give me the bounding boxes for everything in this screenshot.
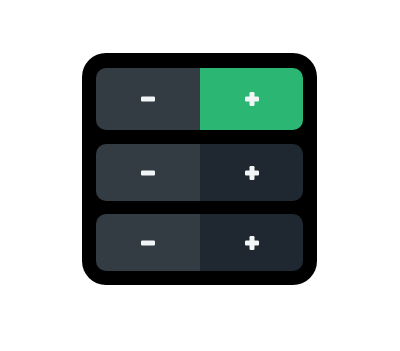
button[interactable]: Increase — [200, 68, 303, 130]
button[interactable]: Increase — [200, 214, 303, 271]
button[interactable]: Decrease — [96, 144, 200, 201]
button[interactable]: Decrease — [96, 68, 200, 130]
button[interactable]: Increase — [200, 144, 303, 201]
button[interactable]: Decrease — [96, 214, 200, 271]
